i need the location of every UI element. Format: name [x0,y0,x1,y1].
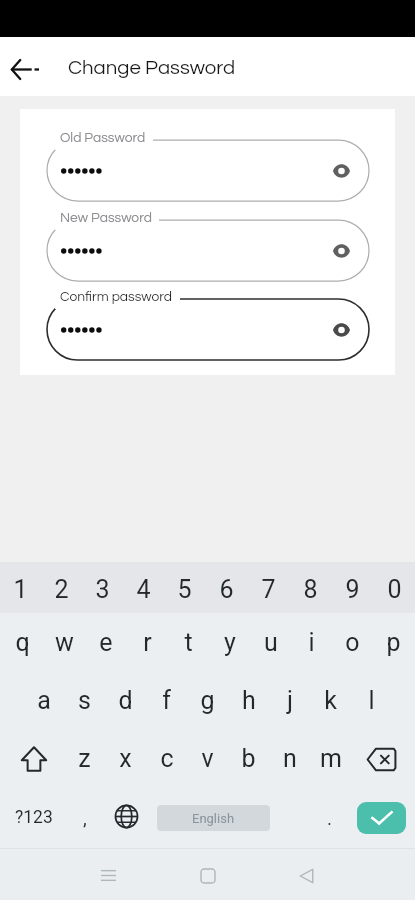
staticText: 6 [219,575,234,604]
staticText: 7 [261,575,276,604]
button[interactable]: g [187,671,228,729]
staticText: r [143,628,152,657]
button[interactable]: i [291,613,332,671]
staticText: h [242,686,256,715]
staticText: v [201,744,214,773]
button[interactable]: 0 [373,562,415,613]
button[interactable]: h [228,671,269,729]
staticText: n [283,744,297,773]
button[interactable]: 4 [123,562,164,613]
staticText: y [224,628,236,657]
staticText: 1 [13,575,28,604]
staticText: b [241,744,256,773]
button[interactable]: Home [185,853,230,898]
staticText: Confirm password [60,290,173,304]
staticText: e [99,628,113,657]
staticText: . [327,807,333,829]
staticText: t [184,628,193,657]
staticText: m [320,744,342,773]
button[interactable]: y [209,613,250,671]
staticText: 8 [303,575,318,604]
staticText: l [368,686,375,715]
button[interactable]: English [157,805,270,831]
button[interactable]: o [332,613,373,671]
staticText: 5 [177,575,192,604]
staticText: New Password [60,211,152,225]
button[interactable]: n [269,729,310,787]
button[interactable]: q [1,613,43,671]
staticText: d [118,686,133,715]
button[interactable]: . [310,787,350,848]
staticText: 2 [54,575,69,604]
button[interactable]: s [64,671,105,729]
button[interactable]: , [64,787,106,848]
button[interactable]: 6 [205,562,247,613]
staticText: a [37,686,51,715]
staticText: 4 [136,575,151,604]
button[interactable]: j [269,671,310,729]
button[interactable]: Backspace [351,729,415,787]
button[interactable]: Navigate up [0,37,50,96]
staticText: ?123 [15,807,53,828]
button[interactable]: 9 [331,562,373,613]
button[interactable]: p [373,613,414,671]
button[interactable]: c [146,729,187,787]
button[interactable]: l [351,671,392,729]
staticText: o [345,628,360,657]
button[interactable]: z [64,729,105,787]
button[interactable]: w [43,613,85,671]
button[interactable]: Show password [324,154,358,188]
button[interactable]: f [146,671,187,729]
staticText: Change Password [68,57,236,78]
button[interactable]: d [105,671,146,729]
button[interactable]: a [23,671,64,729]
button[interactable]: 2 [41,562,82,613]
staticText: i [308,628,315,657]
button[interactable]: 8 [289,562,331,613]
button[interactable]: 3 [82,562,123,613]
staticText: s [78,686,91,715]
button[interactable]: Recent apps [86,853,131,898]
button[interactable]: k [310,671,351,729]
staticText: Old Password [60,131,146,145]
button[interactable]: Enter [357,802,406,834]
staticText: c [160,744,174,773]
staticText: , [83,807,87,829]
staticText: j [287,686,293,715]
staticText: q [15,628,30,657]
staticText: u [264,628,278,657]
button[interactable]: Show password [324,234,358,268]
button[interactable]: m [310,729,351,787]
staticText: f [162,686,171,715]
staticText: w [55,628,74,657]
button[interactable]: 1 [0,562,41,613]
staticText: 3 [95,575,110,604]
button[interactable]: b [228,729,269,787]
staticText: p [386,628,401,657]
staticText: g [200,686,215,715]
staticText: k [324,686,337,715]
button[interactable]: u [250,613,291,671]
button[interactable]: v [187,729,228,787]
button[interactable]: 5 [164,562,205,613]
button[interactable]: Shift [0,729,64,787]
staticText: English [192,811,235,826]
button[interactable]: e [85,613,127,671]
staticText: z [78,744,91,773]
button[interactable]: x [105,729,146,787]
button[interactable]: t [168,613,209,671]
staticText: 0 [387,575,402,604]
button[interactable]: r [127,613,168,671]
staticText: x [119,744,132,773]
button[interactable]: ?123 [0,787,68,848]
button[interactable]: Back [284,853,329,898]
button[interactable]: Show password [324,313,358,347]
button[interactable]: Switch keyboard language [106,787,146,848]
staticText: 9 [345,575,360,604]
button[interactable]: 7 [247,562,289,613]
